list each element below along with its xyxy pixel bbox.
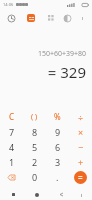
button[interactable]: ( ) xyxy=(23,109,46,124)
staticText: 2 xyxy=(32,156,38,168)
staticText: 6 xyxy=(55,141,61,153)
button[interactable]: 9 xyxy=(46,124,69,139)
staticText: 0 xyxy=(32,171,38,183)
button[interactable]: 6 xyxy=(46,139,69,154)
button[interactable]: 0 xyxy=(23,169,46,185)
staticText: 9 xyxy=(55,126,61,138)
staticText: 4 xyxy=(9,141,15,153)
button[interactable]: 2 xyxy=(23,154,46,169)
button[interactable]: − xyxy=(69,139,92,154)
staticText: − xyxy=(78,141,84,153)
staticText: 7 xyxy=(9,126,15,138)
staticText: ÷ xyxy=(78,111,84,123)
staticText: + xyxy=(78,156,84,168)
button[interactable]: Back xyxy=(55,189,67,200)
staticText: 8 xyxy=(32,126,38,138)
button[interactable]: Home xyxy=(31,189,43,200)
staticText: 1 xyxy=(9,156,15,168)
staticText: % xyxy=(54,111,61,122)
button[interactable]: Calculator xyxy=(24,11,38,25)
button[interactable]: . xyxy=(46,169,69,185)
button[interactable]: Keyboard xyxy=(76,190,86,200)
button[interactable]: + xyxy=(69,154,92,169)
staticText: 5 xyxy=(32,141,38,153)
button[interactable]: Recents xyxy=(7,189,19,200)
button[interactable]: Converter xyxy=(44,11,58,25)
staticText: C xyxy=(9,111,15,122)
button[interactable]: Theme xyxy=(60,11,74,25)
staticText: . xyxy=(56,171,59,183)
button[interactable]: Backspace xyxy=(0,169,23,185)
button[interactable]: More options xyxy=(76,12,88,24)
staticText: 150+60+39+80 xyxy=(37,49,86,59)
button[interactable]: History xyxy=(4,11,18,25)
button[interactable]: C xyxy=(0,109,23,124)
staticText: ( ) xyxy=(31,112,38,122)
staticText: 3 xyxy=(55,156,61,168)
button[interactable]: ÷ xyxy=(69,109,92,124)
button[interactable]: 1 xyxy=(0,154,23,169)
button[interactable]: 4 xyxy=(0,139,23,154)
staticText: = xyxy=(78,172,83,183)
staticText: = 329 xyxy=(47,62,86,82)
button[interactable]: × xyxy=(69,124,92,139)
staticText: × xyxy=(78,126,84,138)
button[interactable]: 3 xyxy=(46,154,69,169)
button[interactable]: 8 xyxy=(23,124,46,139)
button[interactable]: 7 xyxy=(0,124,23,139)
button[interactable]: 5 xyxy=(23,139,46,154)
button[interactable]: % xyxy=(46,109,69,124)
button[interactable]: = xyxy=(74,171,87,184)
staticText: 14:06 xyxy=(3,2,14,7)
